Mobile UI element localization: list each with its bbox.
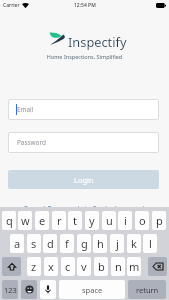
staticText: x bbox=[48, 259, 54, 274]
staticText: p bbox=[156, 213, 163, 228]
button[interactable]: z bbox=[27, 257, 41, 276]
staticText: 12:54 PM bbox=[74, 2, 96, 9]
button[interactable]: Emoji bbox=[21, 280, 37, 299]
button[interactable]: j bbox=[110, 234, 124, 253]
staticText: s bbox=[31, 236, 37, 251]
button[interactable]: u bbox=[102, 211, 116, 230]
staticText: z bbox=[31, 259, 37, 274]
button[interactable]: Password bbox=[8, 132, 159, 153]
button[interactable]: Email bbox=[8, 99, 159, 120]
button[interactable]: d bbox=[43, 234, 57, 253]
button[interactable]: h bbox=[93, 234, 107, 253]
staticText: return bbox=[136, 285, 159, 295]
button[interactable]: a bbox=[10, 234, 24, 253]
button[interactable]: t bbox=[68, 211, 82, 230]
button[interactable]: l bbox=[143, 234, 157, 253]
staticText: j bbox=[116, 236, 119, 251]
staticText: r bbox=[57, 213, 62, 228]
button[interactable]: m bbox=[127, 257, 141, 276]
staticText: q bbox=[6, 213, 13, 228]
staticText: Carrier bbox=[3, 2, 20, 9]
staticText: Home Inspections, Simplified bbox=[0, 53, 169, 60]
staticText: Login bbox=[74, 175, 94, 185]
staticText: space bbox=[82, 285, 103, 295]
button[interactable]: e bbox=[35, 211, 49, 230]
staticText: a bbox=[14, 236, 21, 251]
staticText: Inspectify bbox=[68, 33, 127, 50]
staticText: d bbox=[47, 236, 54, 251]
button[interactable]: p bbox=[152, 211, 166, 230]
button[interactable]: r bbox=[52, 211, 66, 230]
button[interactable]: c bbox=[61, 257, 75, 276]
button[interactable]: x bbox=[44, 257, 58, 276]
button[interactable]: 123 bbox=[2, 280, 18, 299]
staticText: u bbox=[106, 213, 113, 228]
button[interactable]: f bbox=[60, 234, 74, 253]
staticText: v bbox=[81, 259, 87, 274]
button[interactable]: i bbox=[118, 211, 132, 230]
staticText: f bbox=[65, 236, 69, 251]
staticText: n bbox=[115, 259, 122, 274]
button[interactable]: Dictate bbox=[40, 280, 56, 299]
button[interactable]: Login bbox=[8, 170, 159, 189]
staticText: w bbox=[21, 213, 30, 228]
button[interactable]: n bbox=[111, 257, 125, 276]
staticText: l bbox=[149, 236, 152, 251]
staticText: c bbox=[65, 259, 71, 274]
button[interactable]: Shift bbox=[2, 257, 21, 276]
button[interactable]: q bbox=[2, 211, 16, 230]
staticText: m bbox=[129, 259, 140, 274]
button[interactable]: o bbox=[135, 211, 149, 230]
staticText: y bbox=[89, 213, 95, 228]
staticText: o bbox=[139, 213, 146, 228]
staticText: | bbox=[80, 204, 92, 214]
staticText: Password bbox=[17, 138, 46, 147]
button[interactable]: Forgot Password bbox=[24, 204, 80, 214]
staticText: Email bbox=[17, 105, 34, 114]
button[interactable]: b bbox=[94, 257, 108, 276]
button[interactable]: g bbox=[77, 234, 91, 253]
staticText: t bbox=[73, 213, 77, 228]
staticText: e bbox=[39, 213, 46, 228]
button[interactable]: space bbox=[59, 280, 125, 299]
staticText: h bbox=[97, 236, 104, 251]
button[interactable]: return bbox=[128, 280, 166, 299]
staticText: i bbox=[124, 213, 127, 228]
button[interactable]: Contact support bbox=[92, 204, 146, 214]
button[interactable]: Backspace bbox=[148, 257, 167, 276]
button[interactable]: k bbox=[127, 234, 141, 253]
staticText: 123 bbox=[4, 285, 17, 295]
staticText: g bbox=[81, 236, 88, 251]
button[interactable]: v bbox=[77, 257, 91, 276]
staticText: k bbox=[131, 236, 137, 251]
button[interactable]: s bbox=[27, 234, 41, 253]
button[interactable]: y bbox=[85, 211, 99, 230]
staticText: b bbox=[98, 259, 105, 274]
button[interactable]: w bbox=[18, 211, 32, 230]
